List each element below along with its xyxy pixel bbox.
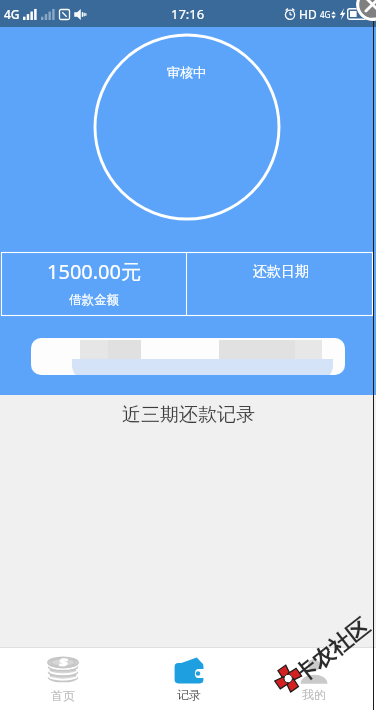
staticText: 17:16 — [171, 5, 205, 23]
button[interactable]: 记录 — [126, 648, 251, 710]
staticText: 4G — [320, 9, 331, 20]
button[interactable]: 我的 — [251, 648, 376, 710]
button[interactable] — [31, 338, 345, 375]
staticText: 还款日期 — [253, 263, 309, 281]
button[interactable]: 首页 — [0, 648, 126, 710]
staticText: 4G — [4, 6, 20, 22]
staticText: 卡农社区 — [289, 613, 375, 689]
staticText: 审核中 — [167, 64, 206, 80]
staticText: 近三期还款记录 — [122, 403, 255, 427]
staticText: 我的 — [302, 687, 326, 702]
staticText: 借款金额 — [69, 292, 119, 308]
button[interactable]: Close — [356, 0, 376, 21]
staticText: 首页 — [51, 688, 75, 703]
staticText: 记录 — [177, 687, 201, 702]
staticText: HD — [299, 6, 317, 22]
staticText: 1500.00元 — [47, 258, 141, 285]
